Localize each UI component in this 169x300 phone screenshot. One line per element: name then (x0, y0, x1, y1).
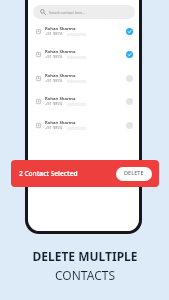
button[interactable]: Search contact here... (33, 5, 135, 19)
staticText: Search contact here... (49, 10, 86, 15)
staticText: +91 9874 (45, 101, 63, 106)
staticText: Rohan Sharma (45, 120, 76, 126)
staticText: +91 9874 (45, 125, 63, 130)
button[interactable]: DELETE (116, 167, 152, 181)
staticText: Rohan Sharma (45, 49, 76, 55)
staticText: Rohan Sharma (45, 73, 76, 79)
button[interactable]: Rohan Sharma (28, 20, 139, 43)
button[interactable]: Rohan Sharma (28, 43, 139, 66)
staticText: CONTACTS (55, 267, 115, 283)
staticText: Rohan Sharma (45, 26, 76, 32)
staticText: Rohan Sharma (45, 96, 76, 102)
button[interactable]: Rohan Sharma (28, 67, 139, 90)
staticText: 2 Contact Selected (19, 169, 78, 178)
staticText: +91 9874 (45, 54, 63, 59)
staticText: +91 9874 (45, 78, 63, 83)
staticText: +91 9874 (45, 31, 63, 36)
staticText: DELETE (124, 169, 144, 177)
button[interactable]: Rohan Sharma (28, 114, 139, 137)
staticText: DELETE MULTIPLE (32, 248, 138, 264)
button[interactable]: Rohan Sharma (28, 90, 139, 113)
